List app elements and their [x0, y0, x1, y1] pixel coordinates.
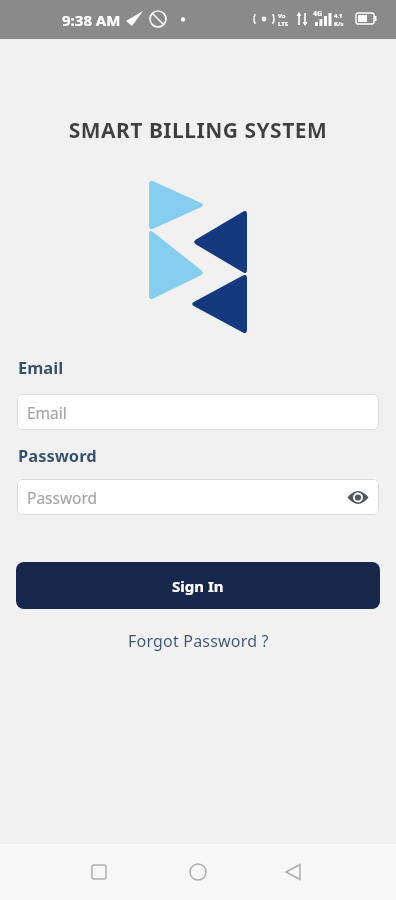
staticText: 4G [313, 9, 323, 19]
staticText: Email [18, 356, 64, 378]
staticText: Vo [278, 12, 286, 20]
staticText: Password [27, 487, 98, 508]
button[interactable]: Forgot Password ? [128, 630, 269, 652]
staticText: Forgot Password ? [128, 630, 269, 652]
button[interactable]: Sign In [16, 562, 380, 609]
button[interactable]: Password [17, 479, 379, 515]
staticText: 9:38 AM [62, 10, 121, 30]
staticText: Password [18, 444, 97, 466]
staticText: Sign In [172, 576, 224, 596]
staticText: Email [27, 402, 67, 423]
staticText: SMART BILLING SYSTEM [0, 116, 396, 145]
button[interactable] [132, 844, 264, 900]
staticText: 4.1 [334, 12, 343, 20]
staticText: LTE [278, 20, 289, 28]
button[interactable] [0, 844, 132, 900]
button[interactable]: Email [17, 394, 379, 430]
staticText: K/s [334, 20, 344, 28]
button[interactable] [264, 844, 396, 900]
